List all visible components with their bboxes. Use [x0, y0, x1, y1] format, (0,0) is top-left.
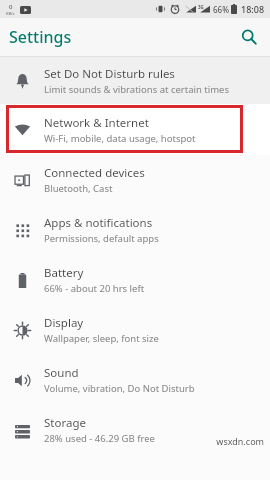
staticText: 0	[9, 3, 13, 11]
staticText: Wallpaper, sleep, font size	[44, 332, 159, 345]
button[interactable]: Storage	[0, 405, 270, 455]
staticText: Permissions, default apps	[44, 232, 159, 245]
button[interactable]: Apps & notifications	[0, 205, 270, 255]
staticText: 66%	[213, 4, 229, 15]
staticText: 3G	[198, 4, 204, 10]
staticText: Set Do Not Disturb rules	[44, 66, 175, 82]
button[interactable]: Search settings	[234, 22, 264, 52]
staticText: 66% - about 20 hrs left	[44, 282, 145, 295]
button[interactable]: Network & Internet	[0, 104, 270, 155]
button[interactable]: Sound	[0, 355, 270, 405]
staticText: wsxdn.com	[216, 435, 264, 447]
button[interactable]: Display	[0, 305, 270, 355]
button[interactable]: Set Do Not Disturb rules	[0, 57, 270, 104]
staticText: Wi-Fi, mobile, data usage, hotspot	[44, 132, 196, 145]
button[interactable]: Battery	[0, 255, 270, 305]
staticText: Sound	[44, 365, 79, 381]
staticText: Limit sounds & vibrations at certain tim…	[44, 83, 229, 96]
staticText: KB/s	[6, 11, 15, 16]
staticText: Apps & notifications	[44, 215, 153, 231]
staticText: Volume, vibration, Do Not Disturb	[44, 382, 195, 395]
staticText: Storage	[44, 415, 86, 431]
staticText: 28% used - 46.29 GB free	[44, 432, 155, 445]
staticText: Battery	[44, 265, 84, 281]
staticText: Bluetooth, Cast	[44, 182, 113, 195]
staticText: Network & Internet	[44, 115, 149, 131]
button[interactable]: Connected devices	[0, 155, 270, 205]
staticText: Settings	[9, 26, 72, 48]
staticText: 18:08	[241, 3, 265, 15]
staticText: Connected devices	[44, 165, 145, 181]
staticText: Display	[44, 315, 84, 331]
